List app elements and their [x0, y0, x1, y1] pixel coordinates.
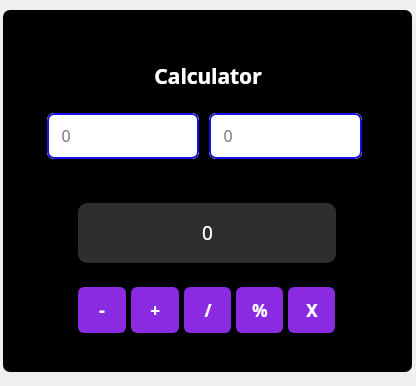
staticText: - [99, 299, 105, 322]
button[interactable]: 0 [47, 113, 199, 159]
button[interactable]: Divide [184, 287, 231, 333]
button[interactable]: Multiply [288, 287, 335, 333]
button[interactable]: Plus [131, 287, 179, 333]
staticText: % [252, 299, 268, 322]
button[interactable]: Minus [78, 287, 126, 333]
button[interactable]: 0 [209, 113, 362, 159]
staticText: 0 [223, 125, 233, 147]
staticText: 0 [61, 125, 71, 147]
staticText: + [150, 299, 160, 322]
button[interactable]: 0 [78, 203, 336, 263]
staticText: Calculator [154, 62, 262, 91]
staticText: / [204, 299, 212, 322]
staticText: 0 [202, 220, 213, 246]
staticText: X [306, 299, 318, 322]
button[interactable]: Percent [236, 287, 283, 333]
